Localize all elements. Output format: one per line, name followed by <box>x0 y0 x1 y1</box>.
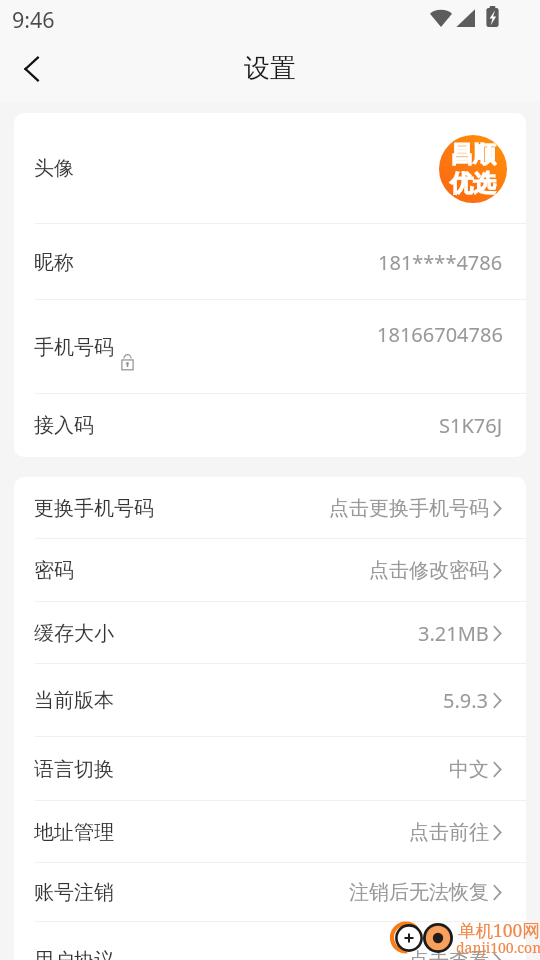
button[interactable]: 缓存大小 <box>14 602 526 664</box>
staticText: 当前版本 <box>34 688 114 713</box>
staticText: 中文 <box>449 757 489 782</box>
staticText: 昵称 <box>34 250 74 275</box>
staticText: 密码 <box>34 558 74 583</box>
button[interactable]: 地址管理 <box>14 801 526 863</box>
button[interactable]: 头像 <box>14 113 526 224</box>
staticText: 设置 <box>244 52 296 85</box>
staticText: 接入码 <box>34 413 94 438</box>
staticText: 语言切换 <box>34 757 114 782</box>
staticText: 地址管理 <box>34 820 114 845</box>
staticText: 头像 <box>34 156 74 181</box>
staticText: 18166704786 <box>377 321 503 348</box>
button[interactable]: 账号注销 <box>14 863 526 922</box>
staticText: 昌顺 <box>450 140 496 169</box>
staticText: 用户协议 <box>34 948 114 960</box>
staticText: 点击查看 <box>409 948 489 960</box>
staticText: 更换手机号码 <box>34 496 154 521</box>
staticText: danji100.com <box>456 938 540 957</box>
staticText: 点击更换手机号码 <box>329 496 489 521</box>
button[interactable]: 接入码 <box>14 394 526 457</box>
staticText: 账号注销 <box>34 880 114 905</box>
button[interactable]: 返回 <box>0 40 62 98</box>
staticText: 181****4786 <box>378 249 503 276</box>
staticText: 手机号码 <box>34 335 114 360</box>
staticText: 单机100网 <box>458 918 540 942</box>
staticText: 点击修改密码 <box>369 558 489 583</box>
button[interactable]: 用户协议 <box>14 922 526 960</box>
button[interactable]: 头像 <box>439 135 507 203</box>
button[interactable]: 昵称 <box>14 224 526 300</box>
staticText: 点击前往 <box>409 820 489 845</box>
staticText: 9:46 <box>12 5 55 34</box>
staticText: 注销后无法恢复 <box>349 880 489 905</box>
button[interactable]: 语言切换 <box>14 737 526 801</box>
staticText: 缓存大小 <box>34 621 114 646</box>
button[interactable]: 更换手机号码 <box>14 477 526 539</box>
button[interactable]: 手机号码 <box>14 300 526 394</box>
staticText: 3.21MB <box>418 620 489 647</box>
button[interactable]: 当前版本 <box>14 664 526 737</box>
staticText: S1K76J <box>439 412 503 439</box>
button[interactable]: 密码 <box>14 539 526 602</box>
staticText: 优选 <box>450 169 496 198</box>
staticText: 5.9.3 <box>443 687 489 714</box>
